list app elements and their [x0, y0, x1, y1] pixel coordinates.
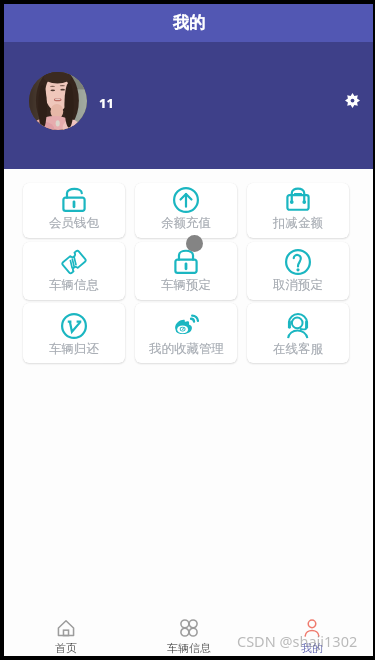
staticText: 车辆信息 [167, 641, 211, 655]
button[interactable]: 取消预定 [247, 242, 349, 300]
button[interactable]: 车辆归还 [23, 303, 125, 363]
staticText: 我的 [301, 641, 323, 655]
button[interactable]: 车辆信息 [127, 608, 250, 656]
staticText: 我的收藏管理 [149, 341, 224, 357]
staticText: 车辆预定 [161, 277, 211, 293]
button[interactable]: 车辆信息 [23, 242, 125, 300]
staticText: CSDN @shaji1302 [237, 631, 358, 651]
button[interactable]: 我的 [250, 608, 373, 656]
staticText: 11 [99, 94, 114, 112]
button[interactable]: 我的收藏管理 [135, 303, 237, 363]
button[interactable]: 车辆预定 [135, 242, 237, 300]
staticText: 在线客服 [273, 341, 323, 357]
button[interactable]: 会员钱包 [23, 183, 125, 238]
button[interactable]: 余额充值 [135, 183, 237, 238]
staticText: 首页 [55, 641, 77, 655]
button[interactable]: 在线客服 [247, 303, 349, 363]
staticText: 扣减金额 [273, 215, 323, 231]
button[interactable]: Settings [337, 85, 367, 115]
staticText: 车辆归还 [49, 341, 99, 357]
button[interactable]: 扣减金额 [247, 183, 349, 238]
button[interactable]: 首页 [4, 608, 127, 656]
staticText: 取消预定 [273, 277, 323, 293]
staticText: 余额充值 [161, 215, 211, 231]
staticText: 会员钱包 [49, 215, 99, 231]
staticText: 车辆信息 [49, 277, 99, 293]
staticText: 我的 [173, 13, 205, 33]
